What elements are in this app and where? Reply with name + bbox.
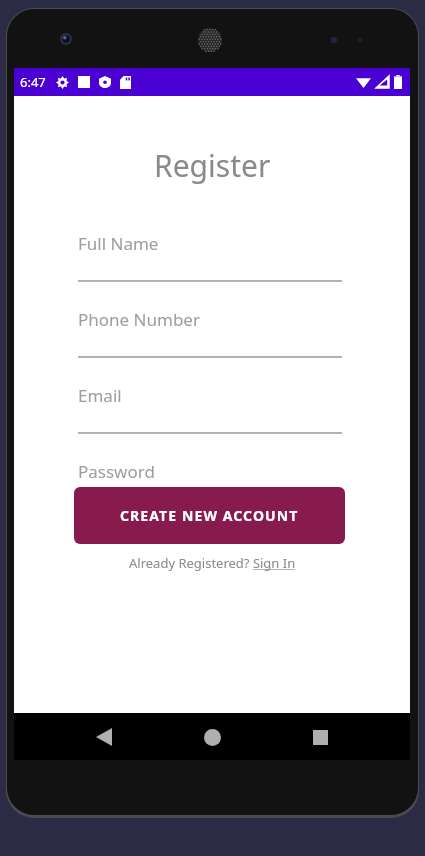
staticText: Register [154,145,271,186]
staticText: Already Registered? Sign In [129,554,296,572]
button[interactable]: Full Name [78,228,342,282]
staticText: Email [78,384,122,407]
button[interactable]: Email [78,380,342,434]
staticText: 6:47 [20,73,46,91]
staticText: CREATE NEW ACCOUNT [120,506,299,525]
button[interactable]: Recent apps [300,717,340,757]
button[interactable]: Home [192,717,232,757]
button[interactable]: Already Registered? Sign In [121,551,304,575]
button[interactable]: CREATE NEW ACCOUNT [74,487,345,544]
staticText: Phone Number [78,308,200,331]
staticText: Password [78,460,155,483]
button[interactable]: Phone Number [78,304,342,358]
button[interactable]: Password [78,456,342,510]
button[interactable]: Back [84,717,124,757]
staticText: Full Name [78,232,159,255]
